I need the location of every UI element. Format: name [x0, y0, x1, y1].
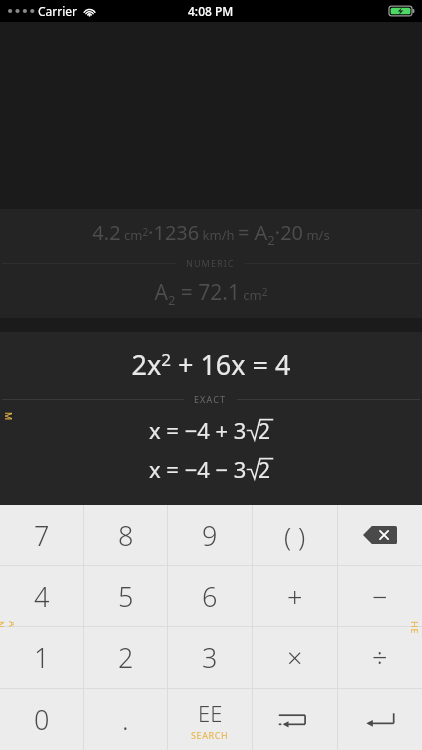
- staticText: x = −4 + 3: [149, 415, 247, 445]
- staticText: 2: [258, 417, 271, 446]
- staticText: 3: [202, 639, 218, 676]
- button[interactable]: OTHER: [408, 583, 422, 673]
- button[interactable]: 0: [0, 689, 83, 750]
- button[interactable]: EE: [168, 689, 252, 750]
- staticText: .: [122, 701, 129, 738]
- button[interactable]: 8: [84, 505, 167, 565]
- staticText: +: [287, 578, 303, 615]
- button[interactable]: 5: [84, 566, 167, 626]
- staticText: NUMERIC: [2, 412, 16, 426]
- staticText: 5: [118, 578, 134, 615]
- button[interactable]: Enter: [338, 689, 422, 750]
- button[interactable]: 6: [168, 566, 252, 626]
- button[interactable]: 7: [0, 505, 83, 565]
- staticText: ×: [287, 639, 303, 676]
- staticText: EE: [198, 698, 223, 728]
- button[interactable]: ÷: [338, 627, 422, 688]
- staticText: SEARCH: [191, 729, 229, 741]
- staticText: 2: [118, 639, 134, 676]
- staticText: −: [372, 578, 388, 615]
- staticText: 4.2 cm2·1236 km/h = A2·20 m/s: [0, 219, 422, 248]
- button[interactable]: 4: [0, 566, 83, 626]
- staticText: 2x2 + 16x = 4: [0, 346, 422, 383]
- button[interactable]: ( ): [253, 505, 337, 565]
- staticText: 7: [34, 517, 50, 554]
- staticText: 6: [202, 578, 218, 615]
- button[interactable]: 9: [168, 505, 252, 565]
- button[interactable]: Backspace: [338, 505, 422, 565]
- staticText: ( ): [284, 518, 306, 553]
- staticText: EXACT: [194, 393, 227, 405]
- staticText: 0: [34, 701, 50, 738]
- staticText: x = −4 − 3: [149, 454, 247, 484]
- staticText: 4:08 PM: [188, 3, 234, 19]
- button[interactable]: 3: [168, 627, 252, 688]
- staticText: 8: [118, 517, 134, 554]
- button[interactable]: Solve: [253, 689, 337, 750]
- button[interactable]: +: [253, 566, 337, 626]
- button[interactable]: NUMERIC: [2, 384, 16, 454]
- button[interactable]: 1: [0, 627, 83, 688]
- staticText: Carrier: [38, 3, 78, 19]
- staticText: 4: [34, 578, 50, 615]
- button[interactable]: ×: [253, 627, 337, 688]
- staticText: 1: [34, 639, 50, 676]
- staticText: OTHER: [408, 621, 422, 635]
- staticText: 2: [258, 456, 271, 485]
- button[interactable]: −: [338, 566, 422, 626]
- staticText: ÷: [372, 639, 388, 676]
- staticText: A2 = 72.1 cm2: [0, 278, 422, 308]
- staticText: 9: [202, 517, 218, 554]
- button[interactable]: .: [84, 689, 167, 750]
- button[interactable]: 2: [84, 627, 167, 688]
- button[interactable]: ADVANCED: [0, 583, 14, 673]
- staticText: ADVANCED: [0, 621, 14, 635]
- staticText: NUMERIC: [186, 257, 235, 269]
